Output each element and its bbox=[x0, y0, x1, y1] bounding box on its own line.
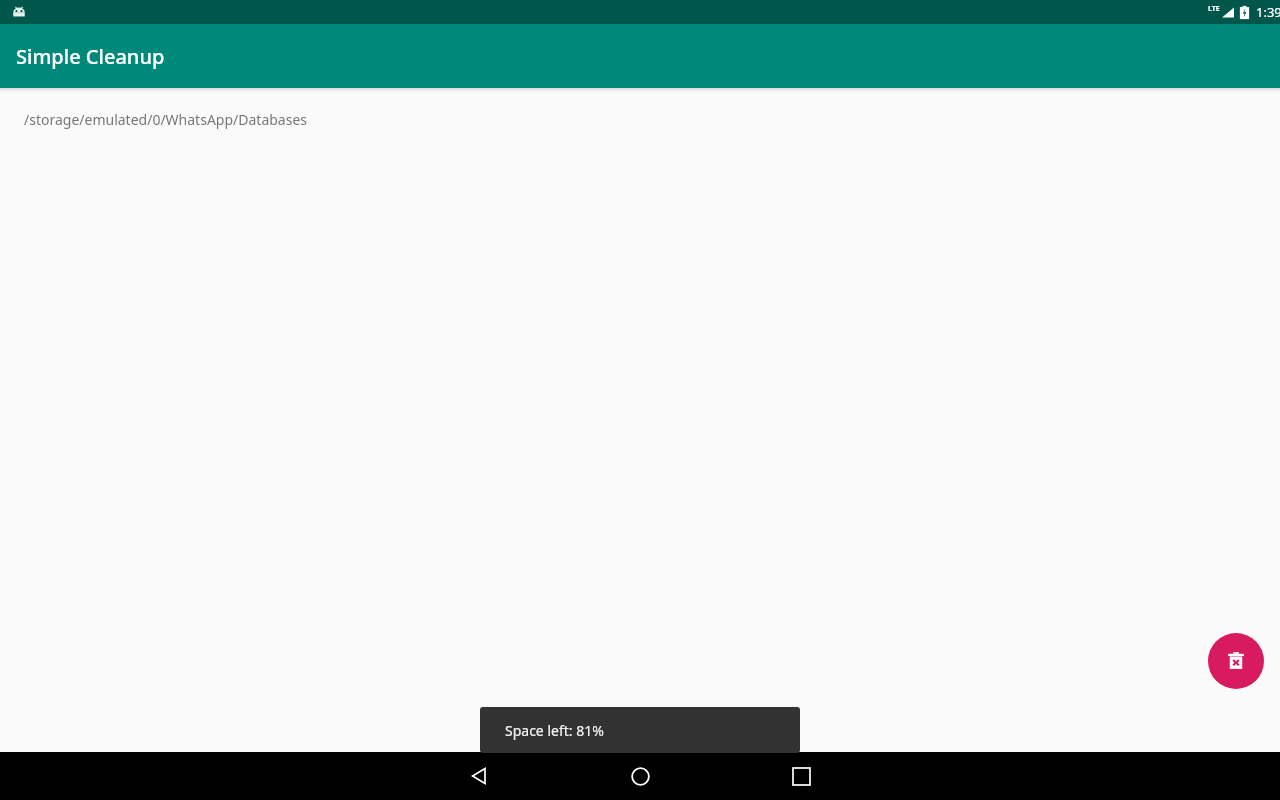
button[interactable]: Back bbox=[455, 752, 503, 800]
button[interactable]: Home bbox=[616, 752, 664, 800]
button[interactable]: Space left: 81% bbox=[480, 707, 800, 753]
staticText: Space left: 81% bbox=[505, 721, 604, 740]
staticText: 1:39 bbox=[1256, 3, 1280, 21]
staticText: LTE bbox=[1208, 4, 1220, 14]
staticText: Simple Cleanup bbox=[16, 43, 165, 70]
staticText: /storage/emulated/0/WhatsApp/Databases bbox=[24, 110, 308, 129]
button[interactable]: Delete files bbox=[1208, 633, 1264, 689]
button[interactable]: Recent apps bbox=[777, 752, 825, 800]
